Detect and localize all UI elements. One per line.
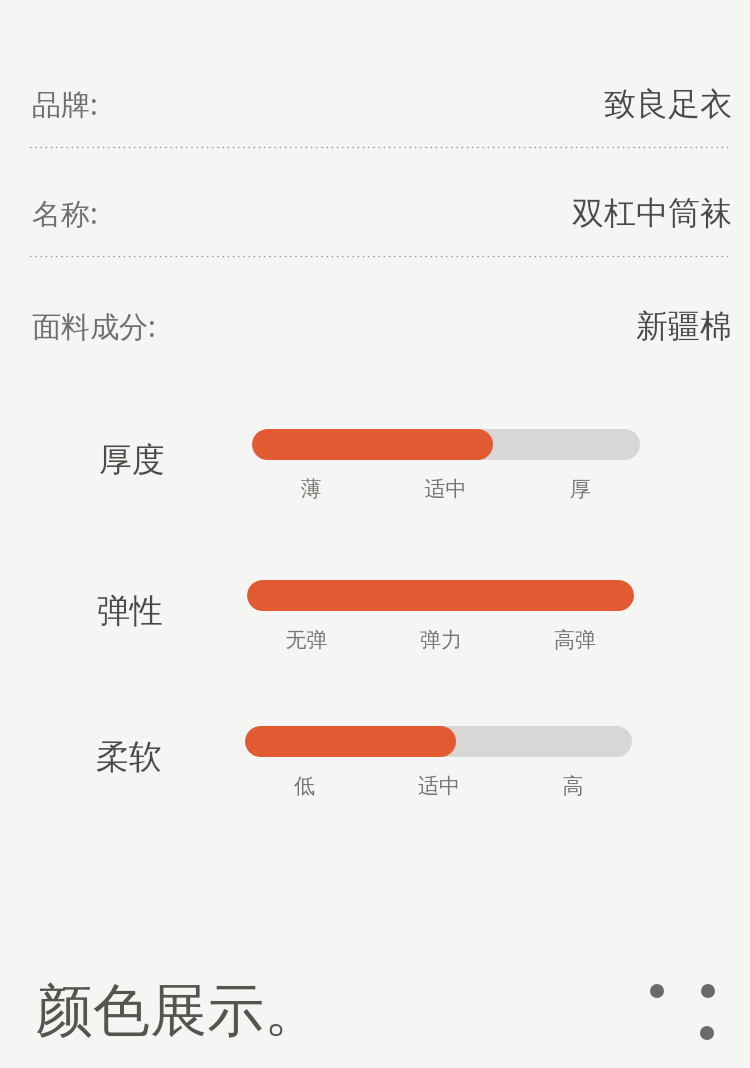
staticText: 名称: [32, 193, 98, 233]
button[interactable]: 品牌: [0, 84, 750, 124]
staticText: 适中 [378, 476, 513, 502]
button[interactable]: 名称: [0, 193, 750, 233]
button[interactable]: More options [640, 975, 730, 1050]
button[interactable]: 弹性 [0, 580, 750, 692]
staticText: 品牌: [32, 84, 98, 124]
staticText: 低 [237, 773, 372, 799]
staticText: 柔软 [69, 736, 189, 778]
staticText: 新疆棉 [636, 306, 732, 346]
staticText: 高 [506, 773, 640, 799]
staticText: 致良足衣 [604, 84, 732, 124]
staticText: 弹力 [374, 627, 508, 653]
button[interactable]: 颜色展示。 [36, 975, 321, 1047]
staticText: 适中 [372, 773, 506, 799]
staticText: 颜色展示。 [36, 975, 321, 1047]
button[interactable]: 面料成分: [0, 306, 750, 346]
staticText: 高弹 [508, 627, 642, 653]
staticText: 弹性 [70, 590, 190, 632]
staticText: 厚 [513, 476, 648, 502]
staticText: 无弹 [239, 627, 374, 653]
staticText: 双杠中筒袜 [572, 193, 732, 233]
button[interactable]: 柔软 [0, 726, 750, 838]
staticText: 面料成分: [32, 306, 156, 346]
staticText: 薄 [244, 476, 378, 502]
staticText: 厚度 [72, 439, 192, 481]
button[interactable]: 厚度 [0, 429, 750, 541]
